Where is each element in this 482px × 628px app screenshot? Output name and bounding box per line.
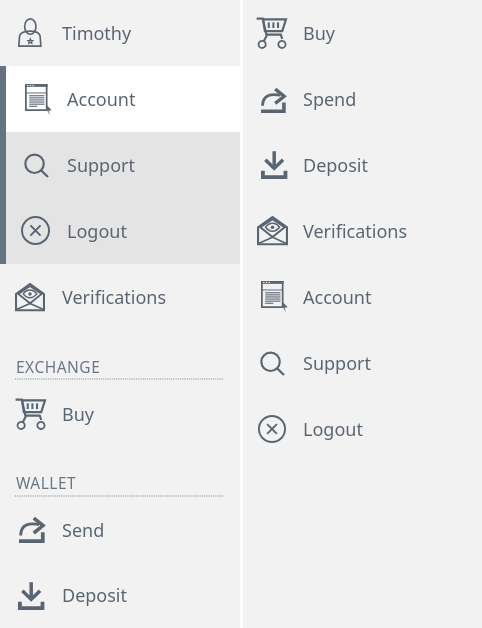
button[interactable]: Deposit bbox=[243, 132, 482, 198]
staticText: Verifications bbox=[303, 219, 408, 244]
staticText: Account bbox=[303, 285, 372, 310]
button[interactable]: Logout bbox=[0, 198, 240, 264]
staticText: Account bbox=[67, 87, 136, 112]
staticText: Spend bbox=[303, 87, 357, 112]
button[interactable]: Timothy bbox=[0, 0, 240, 66]
staticText: Buy bbox=[303, 21, 336, 46]
button[interactable]: Support bbox=[0, 132, 240, 198]
button[interactable]: Account bbox=[243, 264, 482, 330]
button[interactable]: Account bbox=[0, 66, 240, 132]
button[interactable]: Buy bbox=[243, 0, 482, 66]
staticText: Logout bbox=[67, 219, 127, 244]
staticText: EXCHANGE bbox=[16, 356, 101, 377]
staticText: Support bbox=[67, 153, 135, 178]
button[interactable]: Buy bbox=[0, 381, 240, 447]
button[interactable]: Send bbox=[0, 497, 240, 563]
staticText: Logout bbox=[303, 417, 363, 442]
staticText: Timothy bbox=[62, 21, 132, 46]
staticText: Deposit bbox=[303, 153, 369, 178]
button[interactable]: Spend bbox=[243, 66, 482, 132]
button[interactable]: Deposit bbox=[0, 563, 240, 628]
staticText: Support bbox=[303, 351, 371, 376]
button[interactable]: Verifications bbox=[243, 198, 482, 264]
staticText: WALLET bbox=[16, 472, 77, 493]
button[interactable]: Logout bbox=[243, 396, 482, 462]
button[interactable]: Verifications bbox=[0, 264, 240, 330]
staticText: Deposit bbox=[62, 583, 128, 608]
staticText: Verifications bbox=[62, 285, 167, 310]
button[interactable]: Support bbox=[243, 330, 482, 396]
staticText: Buy bbox=[62, 402, 95, 427]
staticText: Send bbox=[62, 518, 105, 543]
